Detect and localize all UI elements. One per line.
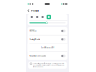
- button[interactable]: Back: [27, 9, 30, 13]
- staticText: Keep Filament Loaded: [29, 55, 46, 57]
- button[interactable]: Cooling Module: [28, 35, 67, 43]
- button[interactable]: Printer control: [30, 15, 33, 19]
- staticText: Printer: [31, 9, 39, 12]
- staticText: This setting only affects single-color, …: [33, 63, 65, 68]
- staticText: Cooling Module: [29, 38, 40, 40]
- button[interactable]: Turn Meters Off: [28, 44, 67, 52]
- button[interactable]: Printer control: [41, 15, 44, 19]
- button[interactable]: Print: [47, 15, 51, 19]
- staticText: Turn Meters Off: [40, 47, 54, 49]
- button[interactable]: HEPA Fan: [28, 27, 67, 35]
- staticText: HEPA Fan: [29, 30, 36, 32]
- button[interactable]: Keep Filament Loaded: [28, 52, 67, 60]
- button[interactable]: Printer control: [36, 15, 39, 19]
